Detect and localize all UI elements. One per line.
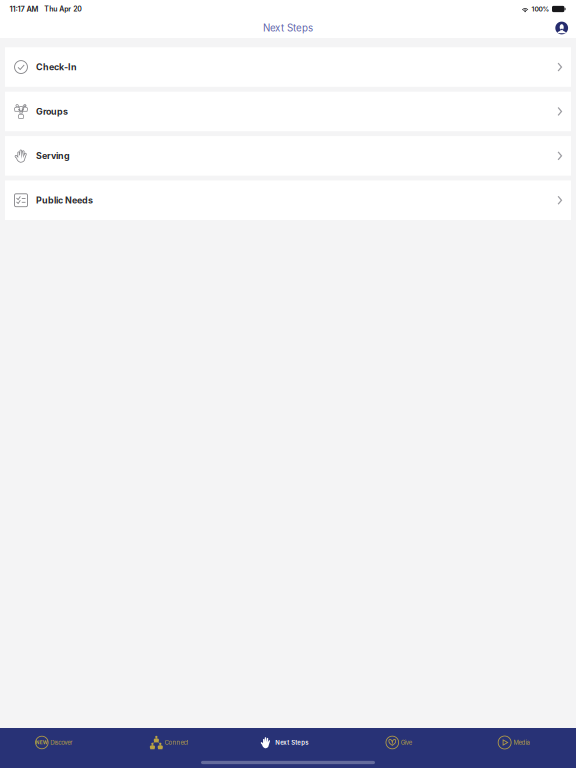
button[interactable]: Connect xyxy=(115,728,230,757)
button[interactable]: Media xyxy=(461,728,576,757)
button[interactable]: Public Needs xyxy=(5,180,571,220)
staticText: Public Needs xyxy=(36,195,93,206)
button[interactable]: Account xyxy=(555,22,576,34)
button[interactable]: Groups xyxy=(5,92,571,131)
staticText: Discover xyxy=(50,739,72,746)
staticText: Next Steps xyxy=(275,739,308,746)
staticText: Connect xyxy=(164,739,188,746)
staticText: Thu Apr 20 xyxy=(44,5,82,13)
staticText: Next Steps xyxy=(263,22,313,34)
button[interactable]: NEW xyxy=(0,728,115,757)
staticText: NEW xyxy=(36,740,48,745)
staticText: 11:17 AM xyxy=(9,4,38,13)
button[interactable]: Give xyxy=(346,728,461,757)
button[interactable]: Next Steps xyxy=(230,728,346,757)
staticText: Groups xyxy=(36,106,68,117)
staticText: 100% xyxy=(532,5,550,13)
button[interactable]: Serving xyxy=(5,136,571,176)
staticText: Check-In xyxy=(36,62,77,72)
staticText: Give xyxy=(401,739,412,746)
button[interactable]: Check-In xyxy=(5,47,571,87)
staticText: Media xyxy=(513,739,529,746)
staticText: Serving xyxy=(36,150,70,161)
